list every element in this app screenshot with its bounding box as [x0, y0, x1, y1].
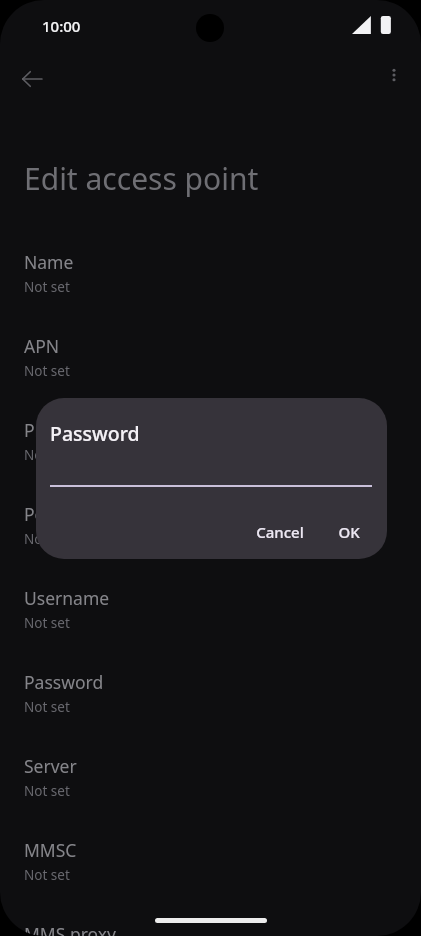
staticText: Not set	[24, 530, 70, 548]
staticText: APN	[24, 334, 60, 358]
staticText: Not set	[24, 614, 70, 632]
staticText: Not set	[24, 362, 70, 380]
button[interactable]: Back	[8, 55, 56, 103]
button[interactable]: MMS proxy	[0, 919, 421, 936]
button[interactable]: More options	[374, 55, 414, 95]
staticText: MMSC	[24, 838, 77, 862]
button[interactable]: Password	[0, 667, 421, 737]
staticText: Not set	[24, 278, 70, 296]
button[interactable]: MMSC	[0, 835, 421, 905]
staticText: Proxy	[24, 418, 70, 442]
button[interactable]: Username	[0, 583, 421, 653]
button[interactable]: Port	[0, 499, 421, 569]
button[interactable]: Cancel	[244, 514, 316, 550]
staticText: 10:00	[42, 16, 81, 36]
staticText: Cancel	[256, 522, 304, 542]
staticText: MMS proxy	[24, 922, 116, 936]
staticText: Username	[24, 586, 110, 610]
staticText: Server	[24, 754, 77, 778]
staticText: Port	[24, 502, 59, 526]
button[interactable]: APN	[0, 331, 421, 401]
staticText: Name	[24, 250, 74, 274]
staticText: Password	[24, 670, 104, 694]
button[interactable]: OK	[326, 514, 372, 550]
staticText: Password	[50, 420, 140, 447]
button[interactable]: Name	[0, 247, 421, 317]
staticText: Not set	[24, 866, 70, 884]
staticText: OK	[338, 522, 360, 542]
staticText: Edit access point	[24, 158, 259, 199]
staticText: Not set	[24, 782, 70, 800]
button[interactable]: Server	[0, 751, 421, 821]
staticText: Not set	[24, 698, 70, 716]
button[interactable]: Proxy	[0, 415, 421, 485]
staticText: Not set	[24, 446, 70, 464]
